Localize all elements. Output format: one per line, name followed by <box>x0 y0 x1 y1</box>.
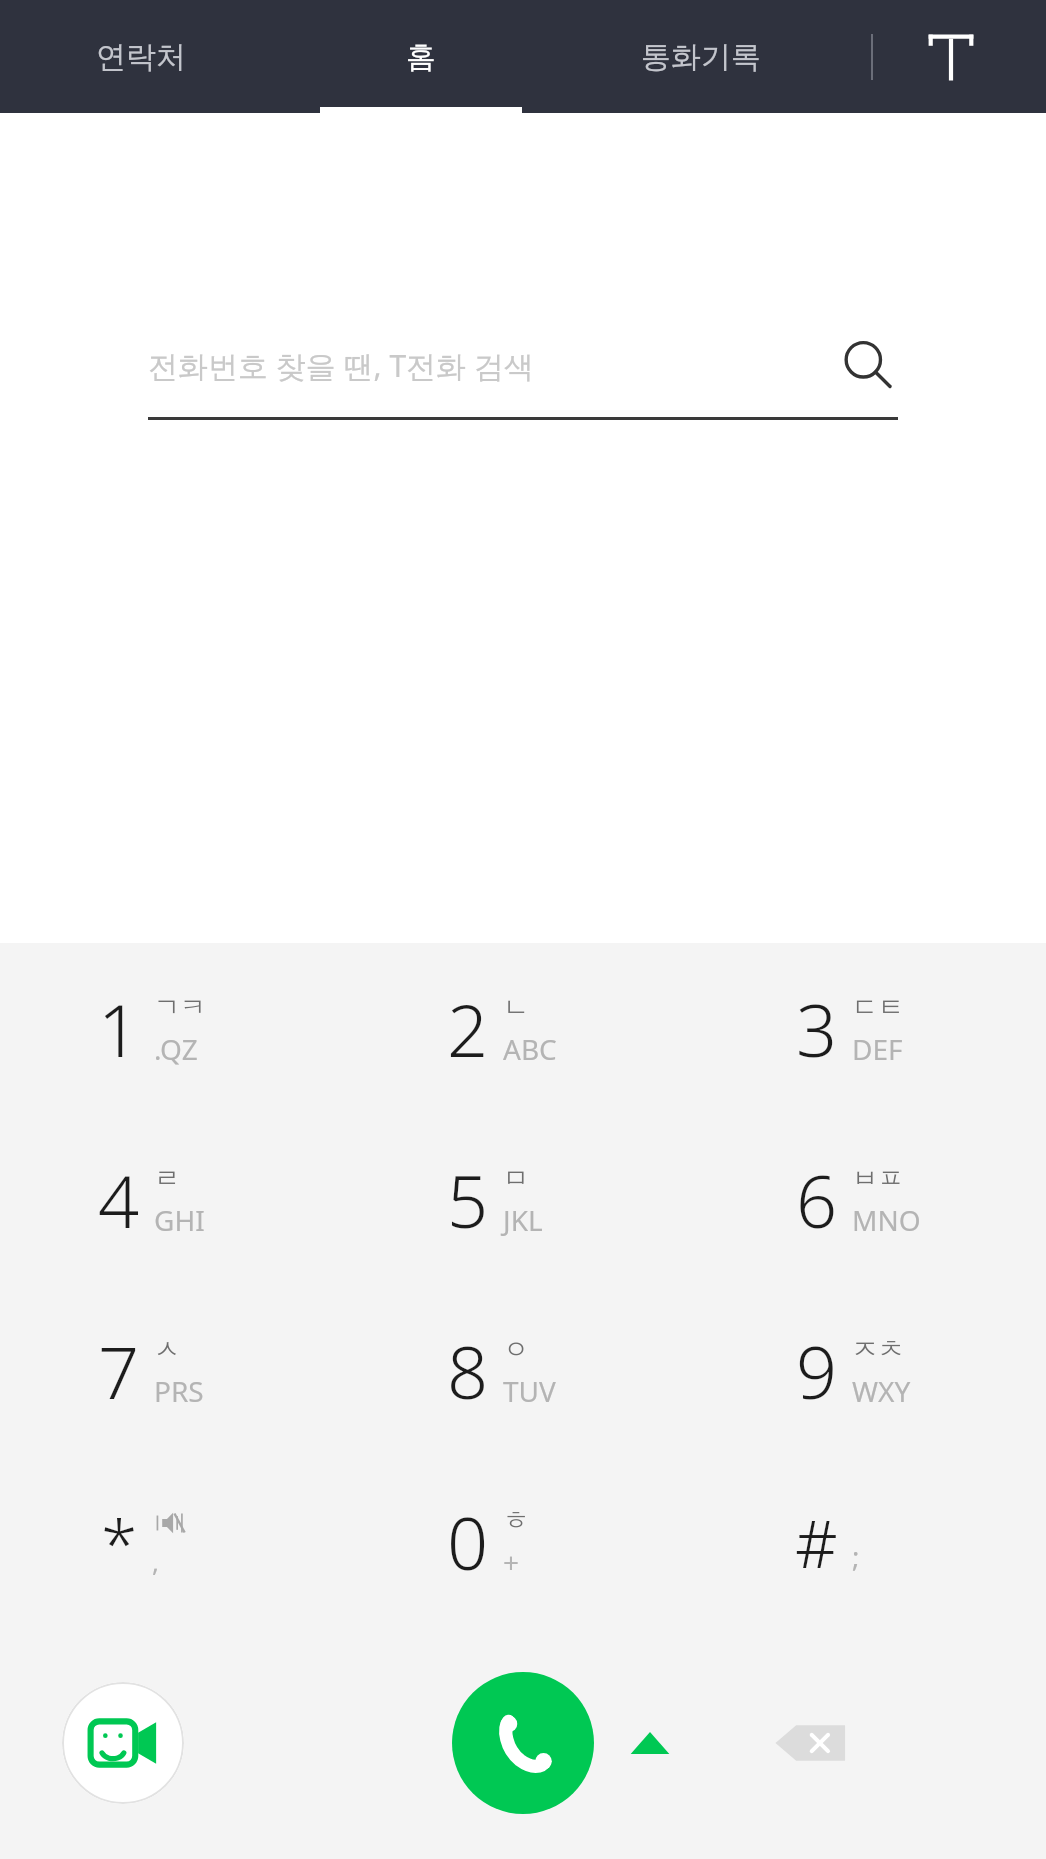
button[interactable]: 4 <box>0 1114 348 1285</box>
staticText: WXY <box>852 1372 911 1410</box>
staticText: ㅇ <box>503 1333 529 1366</box>
button[interactable]: 6 <box>697 1114 1046 1285</box>
staticText: ㅈㅊ <box>852 1333 904 1366</box>
button[interactable]: 지우기 <box>756 1688 866 1798</box>
button[interactable]: 1 <box>0 943 348 1114</box>
staticText: 8 <box>447 1322 489 1420</box>
staticText: 4 <box>98 1151 140 1249</box>
staticText: .QZ <box>154 1030 198 1068</box>
staticText: PRS <box>154 1372 204 1410</box>
staticText: ㄴ <box>503 991 529 1024</box>
staticText: # <box>795 1497 838 1587</box>
staticText: MNO <box>852 1201 921 1239</box>
staticText: 3 <box>796 980 838 1078</box>
staticText: 6 <box>796 1151 838 1249</box>
staticText: 1 <box>98 980 140 1078</box>
staticText: ㄹ <box>154 1162 180 1195</box>
button[interactable]: 영상통화 <box>62 1682 184 1804</box>
button[interactable]: 통화기록 <box>561 0 841 113</box>
staticText: ; <box>852 1537 860 1575</box>
staticText: 연락처 <box>96 38 186 76</box>
button[interactable]: 3 <box>697 943 1046 1114</box>
staticText: ㅂㅍ <box>852 1162 904 1195</box>
staticText: 5 <box>447 1151 489 1249</box>
button[interactable]: T 전화 <box>919 25 983 89</box>
button[interactable]: 0 <box>348 1456 697 1627</box>
staticText: JKL <box>503 1201 543 1239</box>
staticText: 통화기록 <box>641 38 761 76</box>
staticText: DEF <box>852 1030 903 1068</box>
staticText: ABC <box>503 1030 557 1068</box>
staticText: ㄷㅌ <box>852 991 904 1024</box>
button[interactable]: 8 <box>348 1285 697 1456</box>
staticText: 9 <box>796 1322 838 1420</box>
button[interactable]: 연락처 <box>0 0 281 113</box>
staticText: ㄱㅋ <box>154 991 206 1024</box>
staticText: GHI <box>154 1201 205 1239</box>
staticText: 0 <box>447 1493 489 1591</box>
button[interactable]: 7 <box>0 1285 348 1456</box>
button[interactable]: # <box>697 1456 1046 1627</box>
button[interactable]: 5 <box>348 1114 697 1285</box>
button[interactable]: 2 <box>348 943 697 1114</box>
button[interactable]: * <box>0 1456 348 1627</box>
staticText: 홈 <box>406 38 436 76</box>
button[interactable]: 홈 <box>281 0 561 113</box>
button[interactable]: 9 <box>697 1285 1046 1456</box>
staticText: * <box>101 1497 138 1587</box>
staticText: + <box>503 1543 520 1581</box>
button[interactable]: 전화 걸기 <box>452 1672 594 1814</box>
button[interactable]: 전화번호 찾을 땐, T전화 검색 <box>148 335 898 420</box>
staticText: , <box>152 1544 159 1579</box>
staticText: ㅎ <box>503 1504 529 1537</box>
staticText: ㅅ <box>154 1333 180 1366</box>
staticText: TUV <box>503 1372 556 1410</box>
staticText: 전화번호 찾을 땐, T전화 검색 <box>148 345 838 386</box>
staticText: 7 <box>98 1322 140 1420</box>
staticText: 2 <box>447 980 489 1078</box>
staticText: ㅁ <box>503 1162 529 1195</box>
button[interactable]: 펼치기 <box>610 1703 690 1783</box>
